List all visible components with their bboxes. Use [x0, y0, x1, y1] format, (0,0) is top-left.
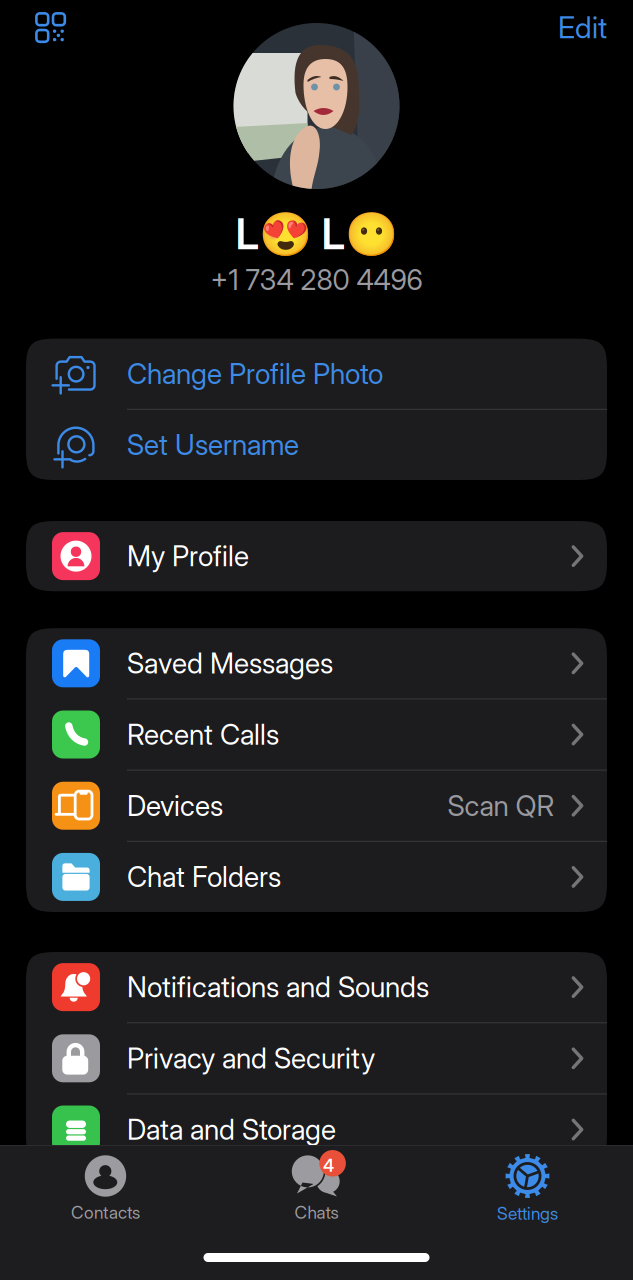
button[interactable]: Privacy and Security — [26, 1023, 607, 1093]
staticText: My Profile — [127, 539, 249, 573]
staticText: Chat Folders — [127, 860, 281, 894]
button[interactable]: Chat Folders — [26, 842, 607, 912]
staticText: Privacy and Security — [127, 1041, 375, 1075]
staticText: 4 — [323, 1155, 334, 1176]
button[interactable]: QR code — [35, 12, 66, 43]
button[interactable]: Notifications and Sounds — [26, 952, 607, 1022]
staticText: Data and Storage — [127, 1113, 336, 1146]
button[interactable]: Set Username — [26, 410, 607, 480]
staticText: L😍 L😶 — [235, 208, 397, 260]
button[interactable]: Saved Messages — [26, 628, 607, 698]
button[interactable]: My Profile — [26, 521, 607, 591]
button[interactable]: Contacts — [0, 1155, 211, 1223]
staticText: Devices — [127, 789, 223, 823]
staticText: Set Username — [127, 428, 299, 462]
button[interactable]: Settings — [422, 1154, 633, 1224]
staticText: Change Profile Photo — [127, 357, 383, 391]
staticText: Chats — [294, 1202, 338, 1223]
staticText: Contacts — [71, 1202, 140, 1223]
staticText: Edit — [558, 10, 607, 45]
button[interactable]: 4 — [211, 1155, 422, 1223]
staticText: Recent Calls — [127, 718, 279, 751]
staticText: +1 734 280 4496 — [210, 263, 422, 297]
button[interactable]: Data and Storage — [26, 1094, 607, 1165]
staticText: Scan QR — [447, 789, 554, 823]
staticText: Notifications and Sounds — [127, 970, 429, 1004]
staticText: Settings — [497, 1203, 558, 1224]
button[interactable]: Recent Calls — [26, 699, 607, 770]
button[interactable]: Devices — [26, 771, 607, 841]
button[interactable]: Edit — [558, 10, 607, 45]
staticText: Saved Messages — [127, 646, 333, 680]
button[interactable]: Change Profile Photo — [26, 339, 607, 409]
